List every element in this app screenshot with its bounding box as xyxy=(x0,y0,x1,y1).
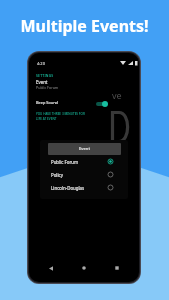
staticText: Beep Sound xyxy=(36,100,59,105)
button[interactable]: Home xyxy=(73,263,95,273)
staticText: ve xyxy=(112,89,122,101)
staticText: Multiple Events! xyxy=(0,15,169,37)
button[interactable]: Recents xyxy=(106,263,128,273)
staticText: Policy xyxy=(51,172,63,178)
staticText: Event xyxy=(79,146,90,152)
staticText: YOU HAVE THREE 3 MINUTES FOR LIFE AT EVE… xyxy=(36,112,85,121)
button[interactable]: Lincoln-Douglas xyxy=(40,181,128,194)
staticText: 4:20 xyxy=(37,61,45,66)
staticText: Lincoln-Douglas xyxy=(51,185,85,191)
staticText: Event xyxy=(36,79,48,85)
button[interactable]: Back xyxy=(40,263,62,273)
button[interactable]: Policy xyxy=(40,168,128,181)
staticText: Public Forum xyxy=(51,159,79,165)
button[interactable]: Public Forum xyxy=(40,155,128,168)
staticText: SETTINGS xyxy=(36,73,54,78)
staticText: Public Forum xyxy=(36,85,59,90)
